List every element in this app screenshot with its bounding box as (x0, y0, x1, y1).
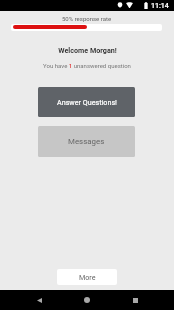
button[interactable]: Recent apps (125, 290, 145, 310)
button[interactable]: Back (29, 290, 49, 310)
button[interactable]: Messages (38, 126, 135, 157)
button[interactable]: Answer Questions! (38, 87, 135, 117)
staticText: More (79, 273, 96, 281)
staticText: 11:14 (151, 2, 169, 10)
staticText: 50% response rate (62, 15, 112, 22)
button[interactable]: More (57, 269, 117, 285)
staticText: Answer Questions! (57, 98, 117, 106)
staticText: Welcome Morgan! (58, 46, 117, 54)
staticText: Messages (68, 137, 105, 146)
button[interactable]: Home (77, 290, 97, 310)
staticText: You have 1 unanswered question (43, 62, 131, 69)
